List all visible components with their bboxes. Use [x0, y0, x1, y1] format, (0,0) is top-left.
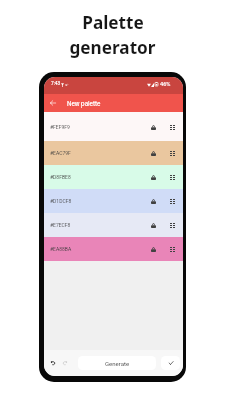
- button[interactable]: #D1DCF8: [44, 189, 183, 213]
- button[interactable]: Reorder: [166, 121, 178, 133]
- button[interactable]: #EA88BA: [44, 237, 183, 261]
- button[interactable]: #FEF9F9: [44, 112, 183, 141]
- button[interactable]: Lock colour: [147, 121, 159, 133]
- button[interactable]: Reorder: [166, 195, 178, 207]
- button[interactable]: Lock colour: [147, 171, 159, 183]
- button[interactable]: Lock colour: [147, 243, 159, 255]
- button[interactable]: Reorder: [166, 219, 178, 231]
- staticText: #E7ECF8: [50, 222, 71, 228]
- button[interactable]: Confirm: [161, 356, 180, 370]
- button[interactable]: #EAC79F: [44, 141, 183, 165]
- button[interactable]: Lock colour: [147, 219, 159, 231]
- staticText: #FEF9F9: [50, 124, 70, 130]
- button[interactable]: Undo: [47, 357, 59, 369]
- staticText: 7:43: [51, 81, 61, 87]
- staticText: Generate: [105, 360, 130, 367]
- button[interactable]: #E7ECF8: [44, 213, 183, 237]
- button[interactable]: Reorder: [166, 147, 178, 159]
- button[interactable]: #D8FBE8: [44, 165, 183, 189]
- button[interactable]: Lock colour: [147, 195, 159, 207]
- button[interactable]: Reorder: [166, 243, 178, 255]
- staticText: 46%: [160, 81, 171, 88]
- staticText: Palette: [82, 11, 144, 34]
- staticText: generator: [69, 36, 156, 59]
- button[interactable]: Lock colour: [147, 147, 159, 159]
- staticText: #D1DCF8: [50, 198, 72, 204]
- staticText: #EAC79F: [50, 150, 71, 156]
- button[interactable]: Redo: [59, 357, 71, 369]
- button[interactable]: Back: [47, 97, 59, 109]
- staticText: New palette: [67, 100, 101, 107]
- button[interactable]: Reorder: [166, 171, 178, 183]
- staticText: #D8FBE8: [50, 174, 71, 180]
- button[interactable]: Generate: [78, 356, 156, 370]
- staticText: #EA88BA: [50, 246, 72, 252]
